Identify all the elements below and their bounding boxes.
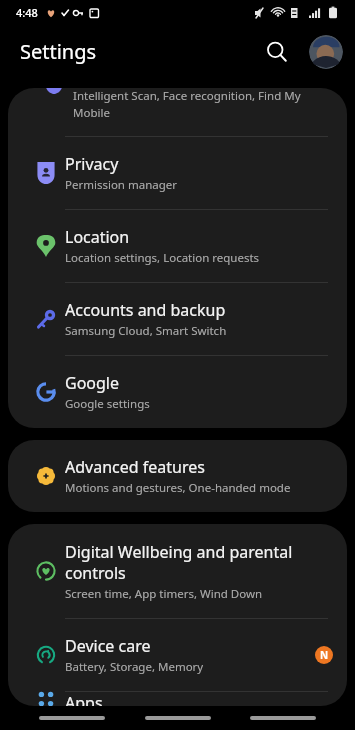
staticText: Apps xyxy=(65,692,103,706)
button[interactable]: Device care xyxy=(8,619,347,691)
button[interactable]: Privacy xyxy=(8,137,347,209)
staticText: Battery, Storage, Memory xyxy=(65,659,204,675)
staticText: Screen time, App timers, Wind Down xyxy=(65,586,263,602)
staticText: Motions and gestures, One-handed mode xyxy=(65,480,291,496)
staticText: Samsung Cloud, Smart Switch xyxy=(65,323,227,339)
button[interactable]: Navigation xyxy=(145,716,211,720)
staticText: 4:48 xyxy=(16,5,38,20)
staticText: Permission manager xyxy=(65,177,178,193)
button[interactable]: Digital Wellbeing and parental controls xyxy=(8,524,347,618)
button[interactable]: Intelligent Scan, Face recognition, Find… xyxy=(8,88,347,136)
button[interactable]: Advanced features xyxy=(8,440,347,512)
button[interactable]: Navigation xyxy=(250,716,316,720)
button[interactable]: Apps xyxy=(8,692,347,706)
staticText: Advanced features xyxy=(65,456,205,478)
button[interactable]: Google xyxy=(8,356,347,428)
staticText: Accounts and backup xyxy=(65,299,226,321)
staticText: Privacy xyxy=(65,153,119,175)
staticText: Google xyxy=(65,372,120,394)
staticText: Digital Wellbeing and parental controls xyxy=(65,541,293,584)
staticText: Settings xyxy=(20,38,97,65)
staticText: Location xyxy=(65,226,130,248)
staticText: Device care xyxy=(65,635,151,657)
button[interactable]: Search xyxy=(257,32,297,72)
button[interactable]: Navigation xyxy=(39,716,105,720)
staticText: Location settings, Location requests xyxy=(65,250,260,266)
staticText: Google settings xyxy=(65,396,150,412)
button[interactable]: Account xyxy=(309,35,343,69)
staticText: Intelligent Scan, Face recognition, Find… xyxy=(73,88,301,120)
button[interactable]: Accounts and backup xyxy=(8,283,347,355)
button[interactable]: Location xyxy=(8,210,347,282)
staticText: N xyxy=(320,648,329,662)
